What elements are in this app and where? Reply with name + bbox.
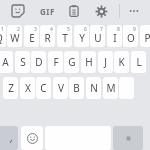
staticText: U: [94, 31, 102, 45]
button[interactable]: T: [57, 25, 72, 47]
button[interactable]: Z: [3, 77, 18, 99]
button[interactable]: L: [131, 51, 146, 73]
staticText: O: [127, 31, 135, 45]
staticText: W: [10, 31, 20, 45]
staticText: V: [58, 81, 64, 95]
staticText: K: [118, 55, 125, 69]
staticText: 8: [117, 26, 120, 33]
staticText: J: [104, 55, 107, 69]
staticText: H: [85, 55, 93, 69]
button[interactable]: E: [24, 25, 39, 47]
button[interactable]: V: [53, 77, 68, 99]
button[interactable]: Emoji: [21, 126, 43, 150]
button[interactable]: More options: [124, 1, 144, 21]
button[interactable]: Comma: [0, 126, 18, 150]
button[interactable]: GIF: [36, 1, 58, 21]
button[interactable]: Stickers: [8, 1, 28, 21]
button[interactable]: U: [90, 25, 105, 47]
button[interactable]: R: [40, 25, 55, 47]
button[interactable]: W: [7, 25, 22, 47]
staticText: T: [62, 31, 68, 45]
staticText: 6: [84, 26, 87, 33]
button[interactable]: K: [114, 51, 129, 73]
staticText: I: [113, 31, 117, 45]
button[interactable]: S: [15, 51, 30, 73]
staticText: E: [29, 31, 35, 45]
staticText: 2: [17, 26, 20, 33]
staticText: 3: [34, 26, 37, 33]
staticText: N: [90, 81, 98, 95]
staticText: 7: [100, 26, 103, 33]
button[interactable]: Enter: [113, 126, 143, 150]
staticText: Z: [8, 81, 14, 95]
button[interactable]: I: [107, 25, 122, 47]
staticText: Q: [0, 31, 3, 45]
button[interactable]: F: [48, 51, 63, 73]
button[interactable]: G: [64, 51, 79, 73]
button[interactable]: M: [103, 77, 118, 99]
staticText: F: [53, 55, 59, 69]
button[interactable]: H: [81, 51, 96, 73]
button[interactable]: C: [36, 77, 51, 99]
staticText: A: [2, 55, 9, 69]
button[interactable]: X: [20, 77, 35, 99]
button[interactable]: O: [123, 25, 138, 47]
staticText: M: [106, 81, 116, 95]
button[interactable]: D: [31, 51, 46, 73]
button[interactable]: B: [69, 77, 84, 99]
staticText: G: [68, 55, 76, 69]
staticText: L: [136, 55, 142, 69]
button[interactable]: Settings: [91, 1, 111, 21]
staticText: 5: [67, 26, 70, 33]
staticText: 4: [50, 26, 53, 33]
button[interactable]: Clipboard: [64, 1, 84, 21]
staticText: B: [73, 81, 80, 95]
button[interactable]: Q: [0, 25, 6, 47]
button[interactable]: Y: [74, 25, 89, 47]
staticText: 9: [133, 26, 136, 33]
button[interactable]: A: [0, 51, 13, 73]
staticText: C: [40, 81, 47, 95]
staticText: S: [20, 55, 26, 69]
staticText: GIF: [40, 6, 55, 17]
staticText: D: [35, 55, 43, 69]
staticText: 1: [1, 26, 4, 33]
button[interactable]: J: [98, 51, 113, 73]
button[interactable]: N: [86, 77, 101, 99]
staticText: R: [44, 31, 51, 45]
staticText: P: [144, 31, 150, 45]
staticText: X: [25, 81, 31, 95]
button[interactable]: P: [140, 25, 150, 47]
staticText: Y: [79, 31, 85, 45]
